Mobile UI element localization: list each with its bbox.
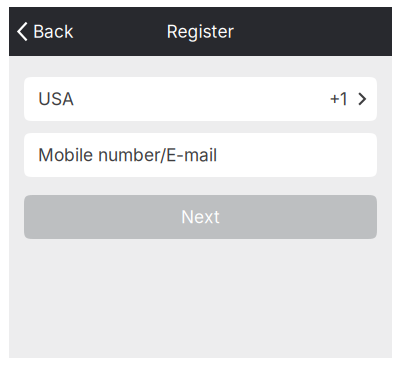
staticText: Back <box>33 21 74 42</box>
staticText: Mobile number/E-mail <box>38 144 217 165</box>
button[interactable]: Mobile number/E-mail <box>24 133 377 177</box>
button[interactable]: Next <box>24 195 377 239</box>
staticText: +1 <box>329 88 347 109</box>
button[interactable]: USA <box>24 77 377 121</box>
staticText: Next <box>181 206 220 227</box>
button[interactable]: Back <box>9 7 86 56</box>
staticText: USA <box>38 88 74 109</box>
staticText: Register <box>166 21 234 42</box>
